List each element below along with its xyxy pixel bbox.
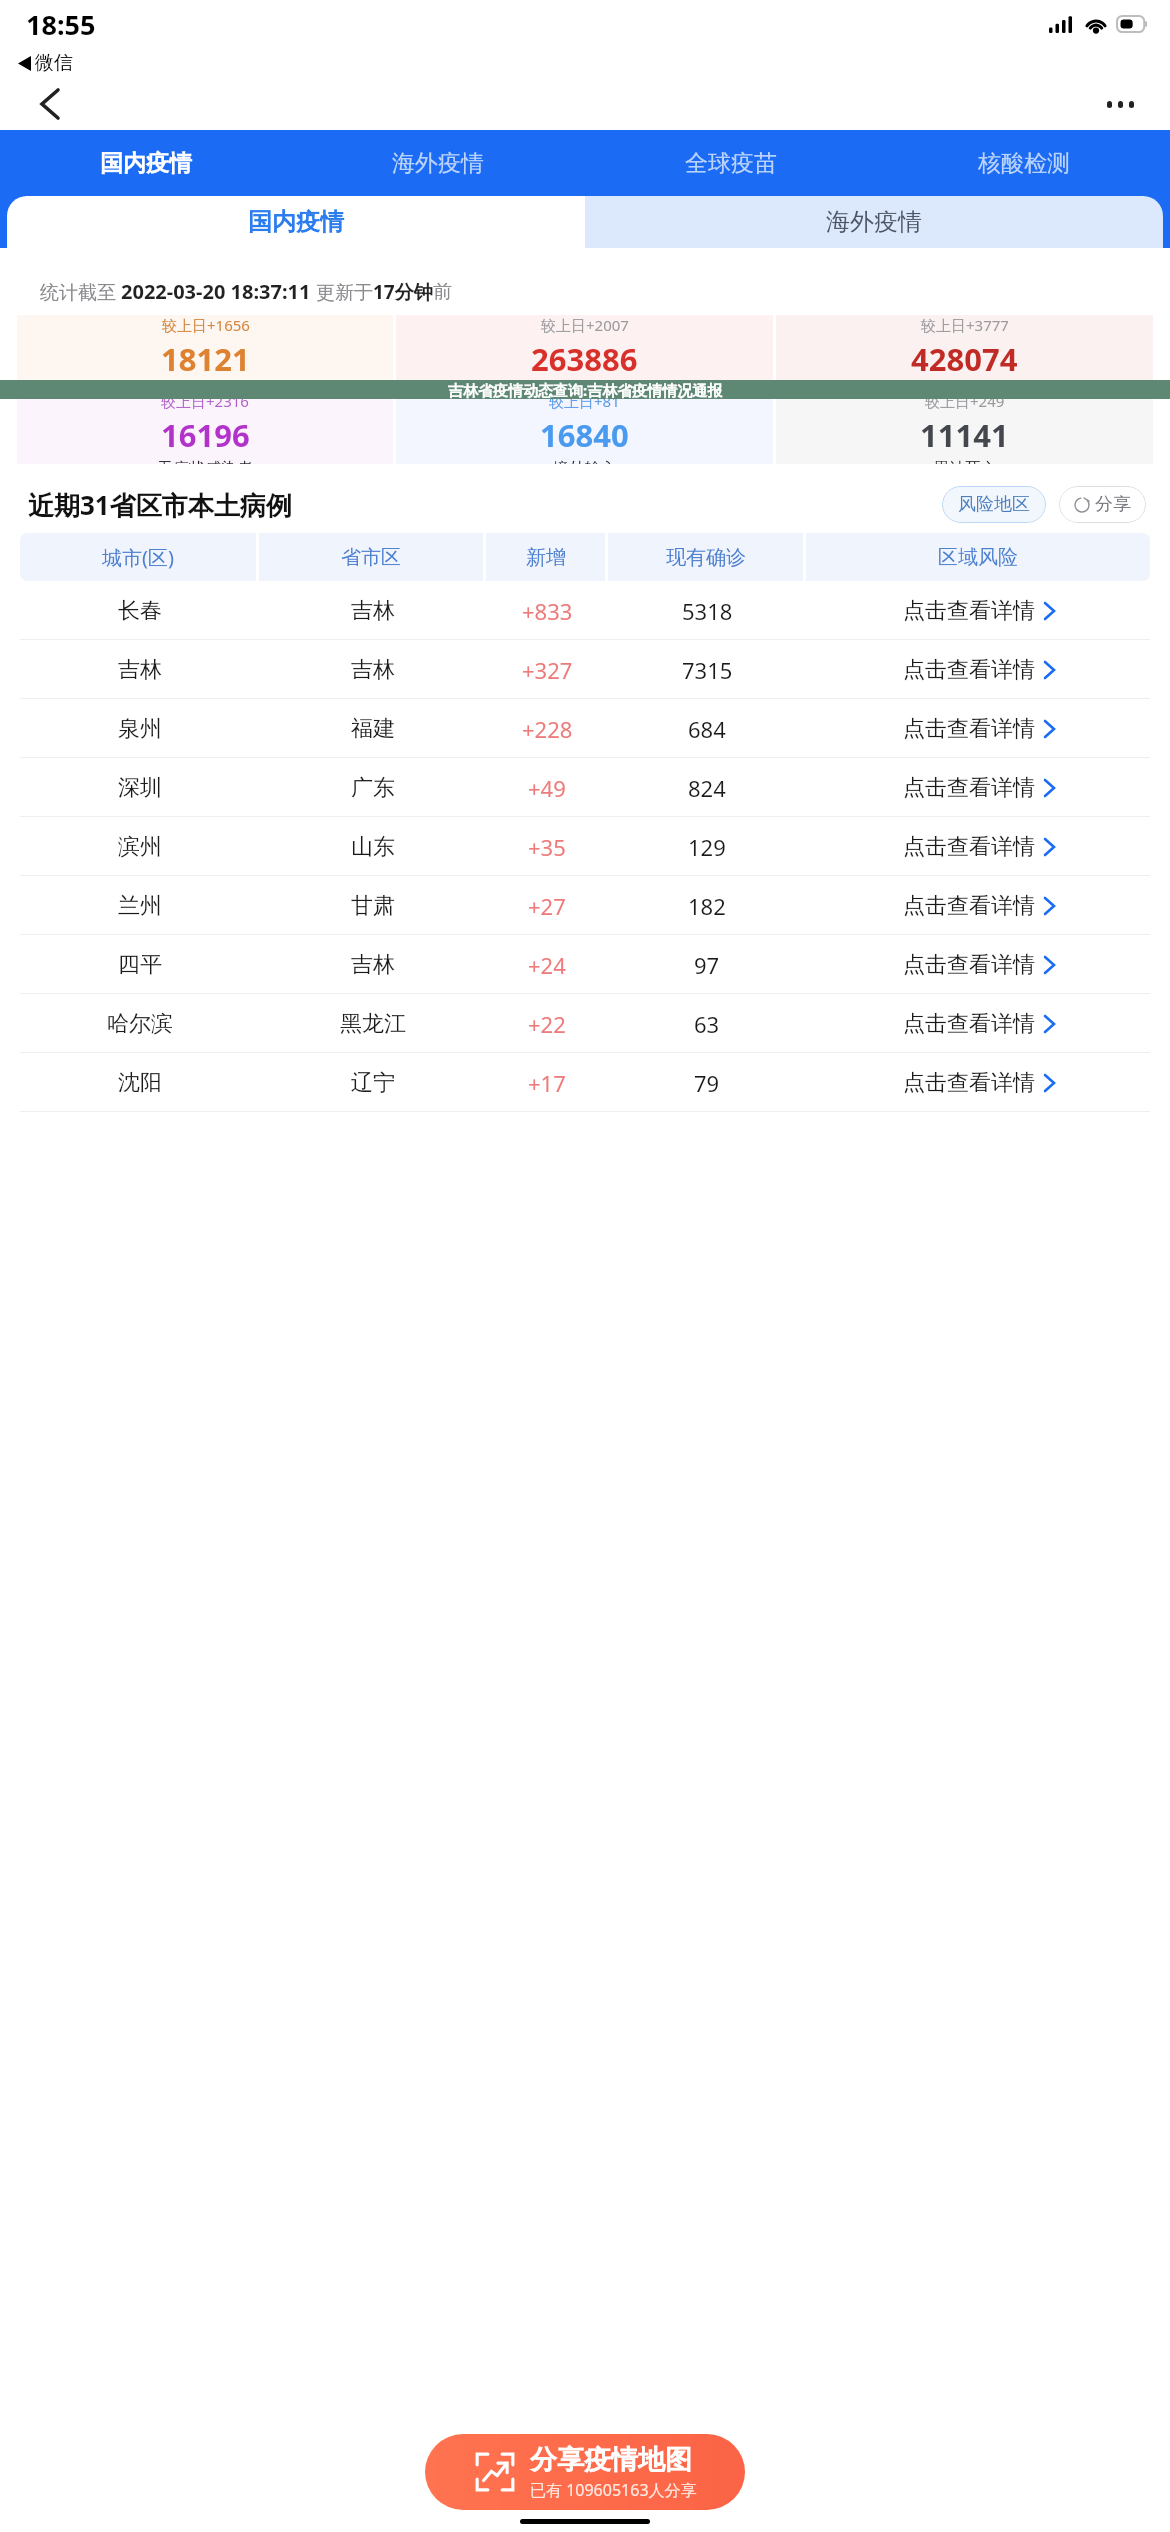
staticText: 深圳 [118,774,162,802]
staticText: 点击查看详情 [903,597,1035,625]
staticText: 辽宁 [351,1069,395,1097]
staticText: 较上日+81 [549,391,620,411]
staticText: 泉州 [118,715,162,743]
staticText: 较上日+3777 [921,315,1009,335]
button[interactable]: 较上日+81 [396,391,773,464]
staticText: 18121 [161,338,250,380]
staticText: 点击查看详情 [903,715,1035,743]
staticText: 较上日+1656 [162,315,250,335]
button[interactable]: 国内疫情 [7,196,585,248]
staticText: +833 [522,596,573,626]
staticText: 吉林省疫情动态查询:吉林省疫情情况通报 [448,380,723,399]
staticText: 全球疫苗 [685,149,777,178]
staticText: 点击查看详情 [903,774,1035,802]
staticText: 现有确诊 [666,545,746,570]
staticText: 山东 [351,833,395,861]
button[interactable]: More options [1098,82,1142,126]
button[interactable]: 分享疫情地图 [425,2434,745,2510]
staticText: 吉林 [351,597,395,625]
staticText: 更新于 [311,279,373,305]
button[interactable]: 长春 [0,581,1170,640]
staticText: 现有确诊 [545,383,609,388]
button[interactable]: 四平 [0,935,1170,994]
button[interactable]: 风险地区 [942,486,1046,523]
staticText: 四平 [118,951,162,979]
staticText: 国内疫情 [100,149,192,178]
button[interactable]: 哈尔滨 [0,994,1170,1053]
staticText: 点击查看详情 [903,656,1035,684]
staticText: 近期31省区市本土病例 [28,487,292,523]
button[interactable]: 海外疫情 [585,196,1163,248]
staticText: 点击查看详情 [903,1069,1035,1097]
staticText: 824 [688,773,726,803]
staticText: 前 [433,280,452,304]
staticText: +327 [522,655,573,685]
button[interactable]: 沈阳 [0,1053,1170,1112]
staticText: +49 [528,773,566,803]
button[interactable]: 泉州 [0,699,1170,758]
staticText: 129 [688,832,726,862]
staticText: 已有 109605163人分享 [530,2479,697,2501]
staticText: 63 [694,1009,720,1039]
button[interactable]: 核酸检测 [877,130,1170,196]
staticText: 吉林 [118,656,162,684]
staticText: 哈尔滨 [107,1010,173,1038]
staticText: 16196 [161,414,250,456]
button[interactable]: 国内疫情 [0,130,292,196]
button[interactable]: 较上日+1656 [17,315,393,388]
staticText: 滨州 [118,833,162,861]
staticText: 7315 [682,655,733,685]
staticText: 核酸检测 [978,149,1070,178]
button[interactable]: 滨州 [0,817,1170,876]
staticText: +24 [528,950,566,980]
staticText: 福建 [351,715,395,743]
staticText: 较上日+249 [925,391,1005,411]
button[interactable]: 海外疫情 [292,130,584,196]
staticText: 海外疫情 [392,149,484,178]
staticText: 区域风险 [938,545,1018,570]
staticText: 点击查看详情 [903,833,1035,861]
staticText: 较上日+2007 [541,315,629,335]
staticText: +228 [522,714,573,744]
staticText: 黑龙江 [340,1010,406,1038]
staticText: 广东 [351,774,395,802]
staticText: 点击查看详情 [903,892,1035,920]
staticText: 风险地区 [958,493,1030,516]
staticText: 11141 [920,414,1009,456]
staticText: 点击查看详情 [903,1010,1035,1038]
staticText: +17 [528,1068,566,1098]
staticText: 新增 [526,545,566,570]
staticText: 5318 [682,596,733,626]
button[interactable]: 较上日+249 [776,391,1153,464]
button[interactable]: 分享 [1059,486,1146,523]
staticText: 海外疫情 [826,207,922,237]
staticText: 微信 [35,51,73,75]
button[interactable]: Back [30,84,70,124]
staticText: 分享 [1095,493,1131,516]
button[interactable]: 深圳 [0,758,1170,817]
staticText: 263886 [531,338,638,380]
button[interactable]: 较上日+3777 [776,315,1153,388]
staticText: 较上日+2316 [161,391,249,411]
staticText: +27 [528,891,566,921]
button[interactable]: 兰州 [0,876,1170,935]
staticText: 182 [688,891,726,921]
button[interactable]: 全球疫苗 [584,130,877,196]
staticText: 省市区 [341,545,401,570]
staticText: 统计截至 [40,279,121,305]
staticText: 国内疫情 [248,207,344,237]
staticText: 2022-03-20 18:37:11 [121,278,311,305]
staticText: 无症状感染者 [157,459,253,464]
staticText: 兰州 [118,892,162,920]
button[interactable]: 较上日+2007 [396,315,773,388]
staticText: 长春 [118,597,162,625]
staticText: +22 [528,1009,566,1039]
staticText: 境外输入 [553,459,617,464]
button[interactable]: 吉林 [0,640,1170,699]
staticText: 684 [688,714,726,744]
staticText: 沈阳 [118,1069,162,1097]
button[interactable]: 较上日+2316 [17,391,393,464]
staticText: 甘肃 [351,892,395,920]
